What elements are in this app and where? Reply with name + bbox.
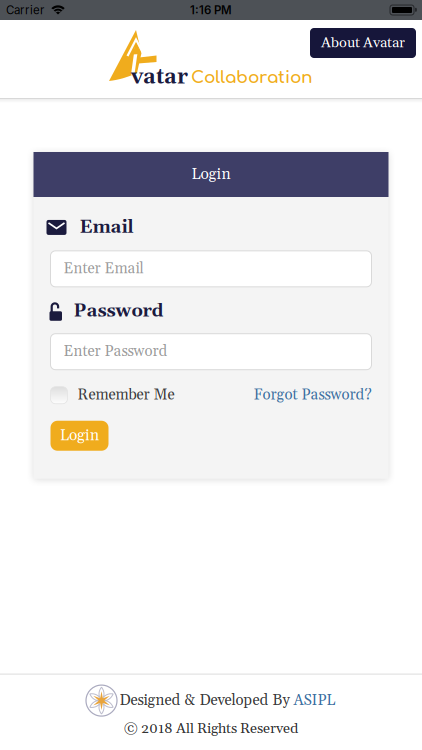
- staticText: Remember Me: [77, 386, 174, 405]
- button[interactable]: Login: [50, 421, 108, 451]
- staticText: Enter Email: [63, 259, 143, 278]
- staticText: Designed & Developed By: [119, 691, 293, 710]
- staticText: vatar: [131, 64, 188, 91]
- staticText: Collaboration: [191, 68, 313, 87]
- button[interactable]: About Avatar: [310, 28, 416, 58]
- staticText: Forgot Password?: [253, 386, 371, 405]
- button[interactable]: Remember Me: [50, 386, 174, 405]
- staticText: Password: [73, 300, 163, 323]
- staticText: 1:16 PM: [190, 3, 232, 17]
- staticText: Login: [60, 426, 99, 446]
- staticText: Login: [191, 165, 230, 184]
- button[interactable]: ASIPL: [293, 691, 335, 710]
- staticText: © 2018 All Rights Reserved: [124, 720, 298, 738]
- staticText: ASIPL: [293, 691, 335, 710]
- button[interactable]: Forgot Password?: [253, 386, 371, 405]
- staticText: Enter Password: [63, 342, 167, 361]
- staticText: Carrier: [6, 3, 44, 17]
- staticText: About Avatar: [321, 34, 405, 52]
- staticText: Email: [79, 216, 133, 239]
